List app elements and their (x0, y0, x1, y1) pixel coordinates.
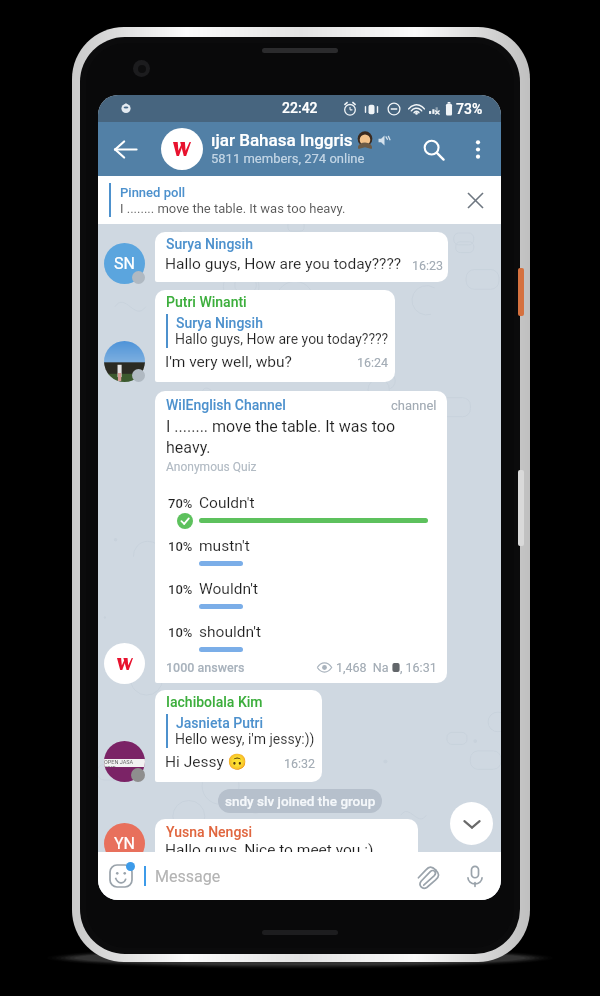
button[interactable]: Group profile (161, 128, 203, 170)
button[interactable]: sndy slv joined the group (218, 789, 382, 813)
button[interactable]: 10% (155, 625, 447, 665)
staticText: Hallo guys, How are you today???? (165, 255, 402, 273)
staticText: Couldn't (199, 494, 255, 512)
button[interactable]: Iachibolala Kim (155, 690, 322, 782)
staticText: OPEN JASA EDIT (104, 759, 145, 767)
staticText: Wouldn't (199, 580, 258, 598)
staticText: 1000 answers (166, 660, 245, 675)
staticText: Hello wesy, i'm jessy:)) (175, 731, 315, 747)
button[interactable]: Record voice message (452, 853, 498, 899)
staticText: Iachibolala Kim (166, 694, 263, 710)
staticText: WilEnglish Channel (166, 397, 286, 413)
staticText: 73% (456, 101, 483, 117)
button[interactable]: Attach file (406, 853, 452, 899)
button[interactable]: 10% (155, 582, 447, 622)
staticText: Surya Ningsih (176, 315, 263, 331)
button[interactable]: Surya Ningsih (155, 232, 448, 282)
staticText: Yusna Nengsi (166, 824, 253, 840)
staticText: channel (391, 398, 437, 413)
button[interactable]: Emoji (98, 853, 144, 899)
button[interactable]: Putri Winanti (155, 290, 395, 382)
staticText: mustn't (199, 537, 250, 555)
staticText: Hallo guys, Nice to meet you :) (165, 841, 374, 859)
staticText: , 16:31 (400, 660, 437, 675)
staticText: sndy slv joined the group (225, 793, 376, 809)
staticText: 1,468 Na (336, 660, 389, 675)
staticText: Pinned poll (120, 185, 186, 200)
staticText: Message (155, 867, 406, 886)
staticText: Putri Winanti (166, 294, 247, 310)
staticText: 16:23 (412, 258, 444, 273)
staticText: 70% (168, 496, 193, 511)
staticText: Hi Jessy 🙃 (165, 753, 247, 771)
staticText: ıjar Bahasa Inggris (211, 130, 353, 150)
staticText: Hallo guys, How are you today???? (175, 331, 389, 347)
staticText: SN (114, 254, 135, 273)
button[interactable]: Search (409, 122, 457, 176)
button[interactable]: WilEnglish Channel (155, 391, 447, 683)
staticText: 10% (168, 539, 193, 554)
staticText: 5811 members, 274 online (211, 151, 365, 166)
staticText: Jasnieta Putri (176, 715, 264, 731)
staticText: 16:24 (357, 355, 389, 370)
button[interactable]: Pinned poll (98, 176, 501, 224)
button[interactable]: Scroll to bottom (450, 802, 493, 845)
staticText: 16:32 (284, 756, 316, 771)
staticText: Surya Ningsih (166, 236, 253, 252)
button[interactable]: 10% (155, 539, 447, 579)
staticText: YN (114, 834, 136, 853)
staticText: I'm very well, wbu? (165, 353, 292, 371)
staticText: I ........ move the table. It was too he… (120, 201, 346, 216)
button[interactable]: More options (457, 122, 499, 176)
staticText: 10% (168, 582, 193, 597)
button[interactable]: 70% (155, 496, 447, 536)
button[interactable]: Yusna Nengsi (155, 819, 418, 867)
button[interactable]: Close pinned message (453, 178, 497, 222)
staticText: shouldn't (199, 623, 261, 641)
staticText: 10% (168, 625, 193, 640)
staticText: I ........ move the table. It was too he… (166, 417, 395, 457)
staticText: Anonymous Quiz (166, 460, 257, 474)
staticText: 22:42 (282, 100, 318, 116)
button[interactable]: Back (101, 122, 149, 176)
